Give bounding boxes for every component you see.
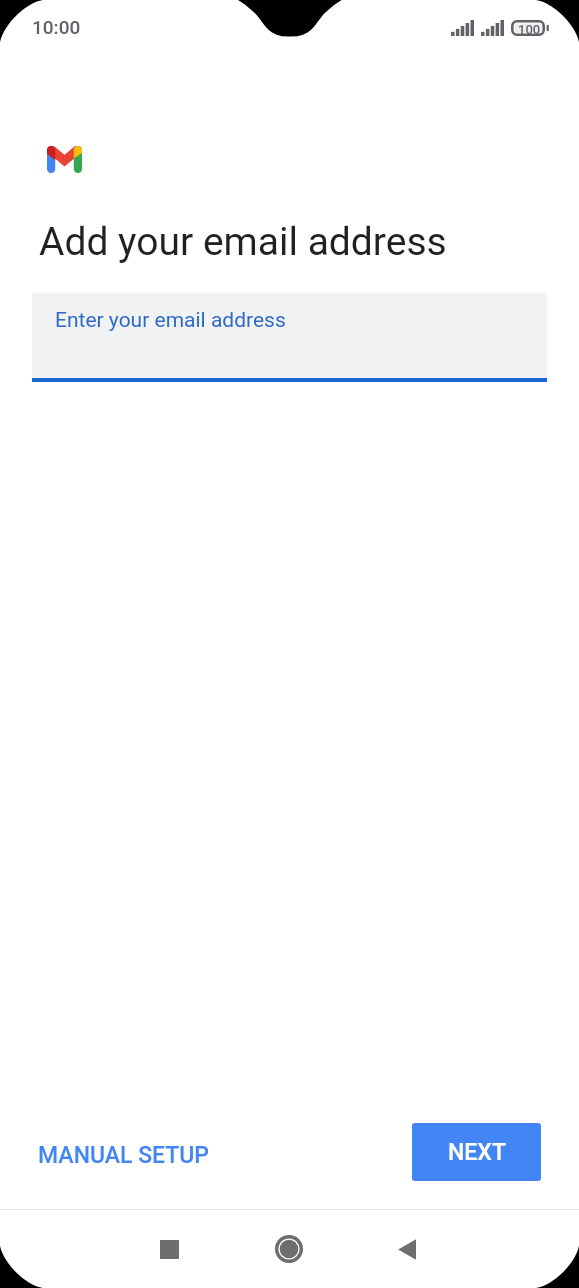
staticText: 10:00 — [32, 16, 81, 38]
button[interactable]: Recent apps — [141, 1221, 197, 1277]
staticText: Enter your email address — [55, 308, 286, 333]
staticText: MANUAL SETUP — [38, 1142, 210, 1169]
button[interactable]: Enter your email address — [32, 293, 547, 382]
button[interactable]: NEXT — [412, 1123, 541, 1181]
staticText: 100 — [518, 22, 541, 37]
button[interactable]: MANUAL SETUP — [26, 1128, 222, 1183]
staticText: Add your email address — [39, 219, 447, 265]
button[interactable]: Back — [378, 1221, 434, 1277]
button[interactable]: Home — [261, 1221, 317, 1277]
staticText: NEXT — [448, 1139, 506, 1166]
